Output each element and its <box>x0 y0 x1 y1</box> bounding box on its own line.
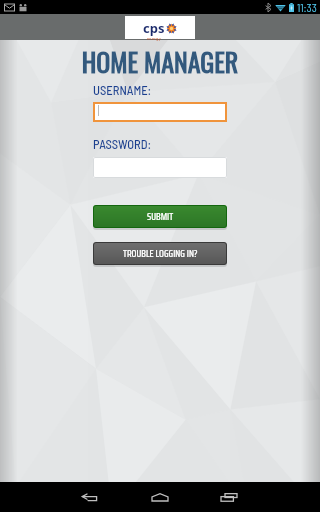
staticText: PASSWORD: <box>93 136 152 151</box>
staticText: 11:33 <box>297 1 317 14</box>
button[interactable]: Recent apps <box>214 482 244 512</box>
staticText: TROUBLE LOGGING IN? <box>123 246 198 261</box>
staticText: SUBMIT <box>147 209 174 224</box>
button[interactable]: SUBMIT <box>93 205 227 228</box>
staticText: energy <box>147 36 161 41</box>
staticText: HOME MANAGER <box>0 42 320 81</box>
staticText: cps <box>143 19 165 37</box>
staticText: USERNAME: <box>93 82 152 97</box>
button[interactable]: Back <box>76 482 106 512</box>
button[interactable]: CPS Energy logo <box>125 16 195 39</box>
button[interactable] <box>93 102 227 122</box>
button[interactable]: TROUBLE LOGGING IN? <box>93 242 227 265</box>
button[interactable] <box>93 157 227 178</box>
button[interactable]: Home <box>145 482 175 512</box>
